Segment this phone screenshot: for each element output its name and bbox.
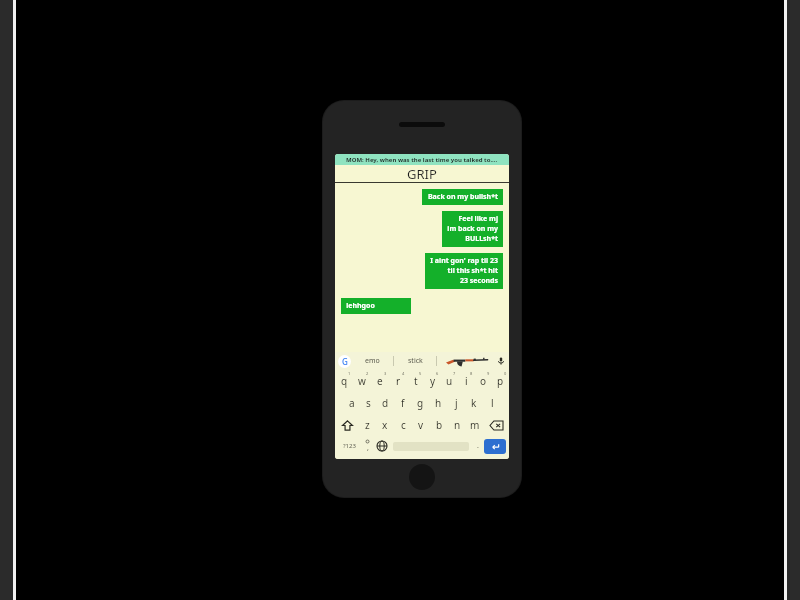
button[interactable]: MOM: Hey, when was the last time you tal… xyxy=(335,154,509,165)
staticText: 9 xyxy=(487,371,490,376)
staticText: y xyxy=(430,374,436,388)
staticText: r xyxy=(396,374,401,388)
staticText: t xyxy=(414,374,418,388)
staticText: 8 xyxy=(470,371,473,376)
staticText: e xyxy=(377,374,383,388)
button[interactable]: Voice input xyxy=(496,352,506,370)
staticText: j xyxy=(455,396,458,410)
button[interactable]: Change language xyxy=(374,436,390,456)
staticText: 0 xyxy=(504,371,507,376)
staticText: c xyxy=(401,418,406,432)
staticText: MOM: Hey, when was the last time you tal… xyxy=(346,156,498,164)
button[interactable]: I aint gon' rap til 23 xyxy=(425,253,503,289)
staticText: m xyxy=(470,418,480,432)
button[interactable]: r xyxy=(389,370,407,392)
staticText: . xyxy=(477,441,479,451)
button[interactable]: ?123 xyxy=(338,436,360,456)
button[interactable]: o xyxy=(475,370,492,392)
button[interactable]: t xyxy=(407,370,424,392)
staticText: Feel like mj xyxy=(458,214,498,224)
button[interactable]: v xyxy=(412,414,430,436)
staticText: a xyxy=(349,396,355,410)
staticText: n xyxy=(454,418,461,432)
button[interactable]: . xyxy=(472,436,484,456)
staticText: 3 xyxy=(384,371,387,376)
staticText: 5 xyxy=(419,371,422,376)
button[interactable]: d xyxy=(377,392,394,414)
button[interactable]: i xyxy=(458,370,475,392)
staticText: z xyxy=(365,418,370,432)
staticText: 23 seconds xyxy=(460,276,498,286)
staticText: w xyxy=(358,374,366,388)
staticText: l xyxy=(491,396,494,410)
staticText: 2 xyxy=(366,371,369,376)
button[interactable]: Comma xyxy=(360,436,374,456)
staticText: 7 xyxy=(453,371,456,376)
button[interactable]: Rifle sticker xyxy=(437,352,496,370)
button[interactable]: a xyxy=(343,392,360,414)
staticText: v xyxy=(418,418,424,432)
staticText: ?123 xyxy=(343,442,356,450)
button[interactable]: k xyxy=(465,392,483,414)
button[interactable]: Backspace xyxy=(484,414,509,436)
staticText: q xyxy=(341,374,348,388)
staticText: I aint gon' rap til 23 xyxy=(430,256,498,266)
staticText: GRIP xyxy=(407,165,437,182)
button[interactable]: y xyxy=(424,370,441,392)
button[interactable]: l xyxy=(483,392,501,414)
button[interactable]: q xyxy=(335,370,353,392)
button[interactable]: z xyxy=(359,414,376,436)
staticText: o xyxy=(480,374,487,388)
button[interactable]: w xyxy=(353,370,371,392)
button[interactable]: Feel like mj xyxy=(442,211,503,247)
staticText: u xyxy=(446,374,453,388)
staticText: til this sh*t hit xyxy=(447,266,498,276)
button[interactable]: Google xyxy=(338,355,351,368)
button[interactable]: g xyxy=(411,392,429,414)
button[interactable]: Shift xyxy=(335,414,359,436)
staticText: , xyxy=(367,443,369,453)
staticText: i xyxy=(465,374,468,388)
staticText: G xyxy=(342,356,348,367)
button[interactable]: emo xyxy=(351,352,393,370)
button[interactable]: j xyxy=(447,392,465,414)
staticText: p xyxy=(497,374,504,388)
staticText: 6 xyxy=(436,371,439,376)
staticText: k xyxy=(471,396,477,410)
button[interactable]: Back on my bullsh*t xyxy=(422,189,503,205)
button[interactable]: stick xyxy=(394,352,436,370)
button[interactable]: u xyxy=(441,370,458,392)
button[interactable]: lehhgoo xyxy=(341,298,411,314)
staticText: d xyxy=(382,396,389,410)
button[interactable]: f xyxy=(394,392,411,414)
button[interactable]: Home xyxy=(409,464,435,490)
button[interactable]: m xyxy=(466,414,484,436)
staticText: BULLsh*t xyxy=(465,234,498,244)
staticText: g xyxy=(417,396,424,410)
button[interactable]: Enter xyxy=(484,439,506,454)
button[interactable]: e xyxy=(371,370,389,392)
button[interactable]: c xyxy=(394,414,412,436)
staticText: f xyxy=(401,396,405,410)
staticText: Back on my bullsh*t xyxy=(427,192,498,202)
button[interactable]: x xyxy=(376,414,394,436)
button[interactable]: n xyxy=(448,414,466,436)
button[interactable]: s xyxy=(360,392,377,414)
button[interactable]: h xyxy=(429,392,447,414)
staticText: im back on my xyxy=(447,224,498,234)
staticText: b xyxy=(436,418,443,432)
staticText: 4 xyxy=(402,371,405,376)
staticText: h xyxy=(435,396,442,410)
staticText: 1 xyxy=(348,371,351,376)
staticText: emo xyxy=(365,356,380,366)
button[interactable]: b xyxy=(430,414,448,436)
staticText: stick xyxy=(408,356,423,366)
button[interactable]: p xyxy=(492,370,509,392)
staticText: lehhgoo xyxy=(346,301,375,311)
staticText: s xyxy=(366,396,371,410)
staticText: x xyxy=(382,418,388,432)
